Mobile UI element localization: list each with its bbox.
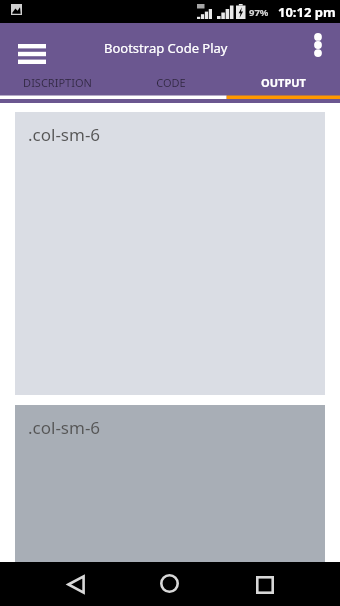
button[interactable]: Home <box>147 569 192 597</box>
button[interactable]: CODE <box>114 68 227 97</box>
staticText: 97% <box>249 6 269 19</box>
staticText: DISCRIPTION <box>23 75 92 90</box>
staticText: 10:12 pm <box>278 3 336 21</box>
button[interactable]: DISCRIPTION <box>0 68 114 97</box>
button[interactable]: More options <box>301 24 335 66</box>
staticText: .col-sm-6 <box>28 416 101 439</box>
button[interactable]: Recent apps <box>242 571 287 599</box>
button[interactable]: Open navigation drawer <box>8 34 56 74</box>
staticText: OUTPUT <box>261 75 306 90</box>
staticText: .col-sm-6 <box>28 123 101 146</box>
button[interactable]: .col-sm-6 <box>15 112 325 395</box>
button[interactable]: .col-sm-6 <box>15 405 325 562</box>
button[interactable]: OUTPUT <box>227 68 340 97</box>
button[interactable]: Back <box>53 570 98 598</box>
staticText: Bootstrap Code Play <box>104 39 228 57</box>
staticText: CODE <box>156 75 186 90</box>
